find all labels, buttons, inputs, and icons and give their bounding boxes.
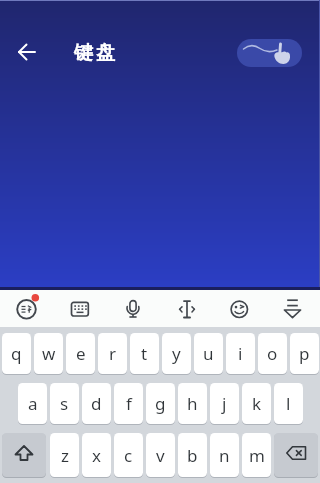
button[interactable] [9,290,45,327]
button[interactable]: y [162,333,191,375]
staticText: s [60,392,69,415]
button[interactable]: m [242,433,271,478]
button[interactable]: i [226,333,255,375]
button[interactable]: s [50,383,79,425]
button[interactable]: q [2,333,31,375]
staticText: w [42,342,56,365]
button[interactable]: f [114,383,143,425]
button[interactable]: x [82,433,111,478]
button[interactable] [237,39,302,67]
button[interactable] [168,290,204,327]
button[interactable] [115,290,151,327]
staticText: t [141,342,148,365]
button[interactable]: k [242,383,271,425]
staticText: z [61,444,69,467]
button[interactable] [9,34,45,70]
staticText: a [28,392,38,415]
button[interactable]: a [18,383,47,425]
button[interactable]: h [178,383,207,425]
staticText: p [299,342,310,365]
staticText: h [187,392,198,415]
staticText: c [124,444,133,467]
button[interactable]: d [82,383,111,425]
staticText: f [126,392,132,415]
staticText: 键 [74,41,93,65]
staticText: n [219,444,230,467]
staticText: b [187,444,198,467]
button[interactable]: j [210,383,239,425]
staticText: 盘 [96,41,115,65]
button[interactable]: t [130,333,159,375]
button[interactable]: b [178,433,207,478]
staticText: m [249,444,265,467]
staticText: r [109,342,117,365]
button[interactable]: n [210,433,239,478]
button[interactable] [274,433,318,478]
staticText: x [92,444,101,467]
button[interactable] [2,433,46,478]
button[interactable] [221,290,257,327]
staticText: i [238,342,243,365]
staticText: y [172,342,181,365]
staticText: j [222,392,227,415]
staticText: q [11,342,22,365]
button[interactable]: g [146,383,175,425]
staticText: g [155,392,166,415]
button[interactable]: v [146,433,175,478]
staticText: k [252,392,262,415]
staticText: e [76,342,86,365]
button[interactable] [274,290,310,327]
button[interactable]: r [98,333,127,375]
button[interactable]: c [114,433,143,478]
staticText: o [267,342,278,365]
button[interactable]: l [274,383,303,425]
staticText: l [286,392,291,415]
button[interactable]: w [34,333,63,375]
button[interactable]: e [66,333,95,375]
button[interactable]: o [258,333,287,375]
staticText: d [91,392,102,415]
button[interactable] [62,290,98,327]
staticText: u [203,342,214,365]
button[interactable]: u [194,333,223,375]
button[interactable]: z [50,433,79,478]
button[interactable]: p [290,333,319,375]
staticText: v [156,444,165,467]
